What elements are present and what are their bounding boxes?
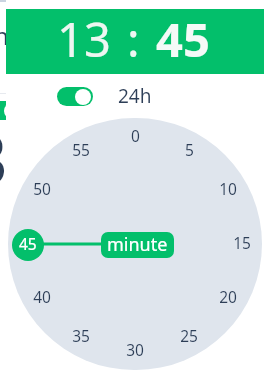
button[interactable]: 0 (117, 124, 153, 146)
staticText: 55 (72, 139, 90, 160)
button[interactable]: 30 (117, 338, 153, 360)
staticText: 40 (33, 286, 51, 307)
button[interactable]: 45 (156, 7, 210, 71)
button[interactable]: 45 (12, 229, 44, 261)
staticText: 15 (233, 232, 251, 253)
button[interactable]: 20 (210, 285, 246, 307)
staticText: 3 (0, 110, 9, 205)
staticText: 50 (33, 178, 51, 199)
staticText: 10 (219, 178, 237, 199)
staticText: : (127, 7, 140, 71)
staticText: n (0, 19, 9, 52)
button[interactable]: 40 (24, 285, 60, 307)
button[interactable]: 5 (171, 138, 207, 160)
button[interactable]: 35 (63, 324, 99, 346)
button[interactable]: 24h (57, 83, 152, 109)
staticText: 30 (126, 339, 144, 360)
staticText: 20 (219, 286, 237, 307)
button[interactable]: 13 (57, 7, 111, 71)
staticText: 25 (180, 325, 198, 346)
button[interactable]: 25 (171, 324, 207, 346)
button[interactable]: 10 (210, 177, 246, 199)
staticText: minute (107, 232, 168, 257)
staticText: 35 (72, 325, 90, 346)
staticText: 0 (131, 125, 140, 146)
button[interactable]: 50 (24, 177, 60, 199)
button[interactable]: minute (101, 232, 174, 258)
staticText: 24h (118, 83, 152, 109)
button[interactable]: 55 (63, 138, 99, 160)
staticText: 45 (19, 233, 37, 254)
button[interactable]: 15 (224, 231, 260, 253)
staticText: 5 (185, 139, 194, 160)
